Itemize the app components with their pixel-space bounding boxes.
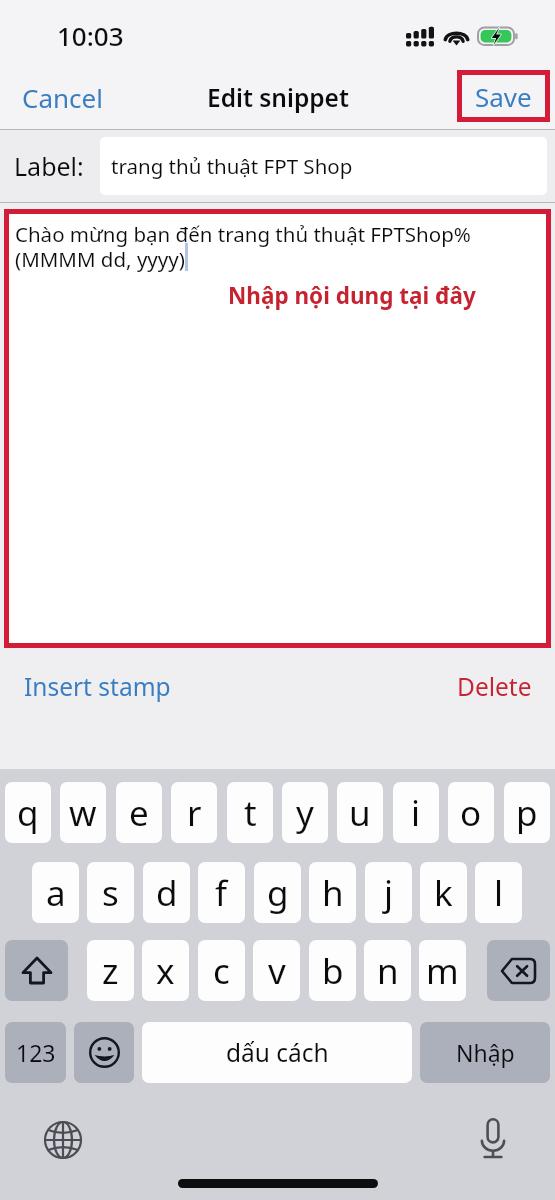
button[interactable]: Dictation [478,1118,508,1160]
staticText: dấu cách [226,1036,329,1069]
button[interactable]: Backspace [487,940,550,1001]
button[interactable]: u [337,782,383,843]
button[interactable]: Nhập [420,1022,550,1083]
button[interactable]: h [309,862,356,923]
button[interactable]: n [364,940,411,1001]
button[interactable]: z [87,940,134,1001]
staticText: r [187,789,202,837]
button[interactable]: p [504,782,550,843]
staticText: Delete [457,670,532,703]
staticText: v [268,947,286,995]
staticText: t [244,789,257,837]
button[interactable]: o [448,782,494,843]
button[interactable]: Delete [437,658,552,715]
button[interactable]: v [253,940,300,1001]
button[interactable]: w [60,782,106,843]
staticText: c [213,947,230,995]
button[interactable]: Change keyboard [44,1121,82,1159]
staticText: h [322,869,344,917]
button[interactable]: g [254,862,301,923]
button[interactable]: k [420,862,467,923]
staticText: Chào mừng bạn đến trang thủ thuật FPTSho… [15,220,471,273]
button[interactable]: Cancel [0,70,125,125]
staticText: q [17,789,39,837]
button[interactable]: c [198,940,245,1001]
button[interactable]: q [5,782,51,843]
staticText: g [267,869,289,917]
staticText: o [460,789,482,837]
staticText: Nhập nội dung tại đây [228,280,476,311]
staticText: m [426,947,459,995]
staticText: s [102,869,119,917]
staticText: z [102,947,119,995]
staticText: Insert stamp [24,670,171,703]
staticText: k [434,869,453,917]
button[interactable]: Emoji [74,1022,134,1083]
staticText: Save [475,79,532,114]
staticText: w [69,789,97,837]
button[interactable]: b [309,940,356,1001]
button[interactable]: m [419,940,466,1001]
staticText: y [296,789,314,837]
staticText: j [384,869,394,917]
button[interactable]: l [475,862,522,923]
staticText: p [516,789,538,837]
staticText: trang thủ thuật FPT Shop [111,152,353,180]
staticText: i [411,789,421,837]
staticText: l [494,869,504,917]
staticText: f [215,869,228,917]
button[interactable]: y [282,782,328,843]
staticText: Nhập [456,1037,515,1068]
staticText: Cancel [22,80,103,115]
button[interactable]: Insert stamp [4,658,191,715]
button[interactable]: x [142,940,189,1001]
staticText: n [377,947,399,995]
button[interactable]: 123 [5,1022,66,1083]
button[interactable]: f [198,862,245,923]
button[interactable]: e [116,782,162,843]
button[interactable]: i [393,782,439,843]
button[interactable]: r [171,782,217,843]
staticText: e [129,789,149,837]
button[interactable]: trang thủ thuật FPT Shop [100,137,547,195]
button[interactable]: Save [457,70,550,122]
staticText: Edit snippet [207,81,349,114]
staticText: u [349,789,371,837]
button[interactable]: dấu cách [142,1022,412,1083]
staticText: Label: [14,149,84,183]
button[interactable]: j [365,862,412,923]
staticText: d [156,869,178,917]
staticText: 123 [16,1037,56,1068]
button[interactable]: d [143,862,190,923]
staticText: 10:03 [57,18,124,53]
staticText: a [46,869,66,917]
button[interactable]: Shift [5,940,68,1001]
staticText: b [322,947,344,995]
button[interactable]: t [227,782,273,843]
button[interactable]: s [87,862,134,923]
button[interactable]: a [32,862,79,923]
staticText: x [156,947,175,995]
